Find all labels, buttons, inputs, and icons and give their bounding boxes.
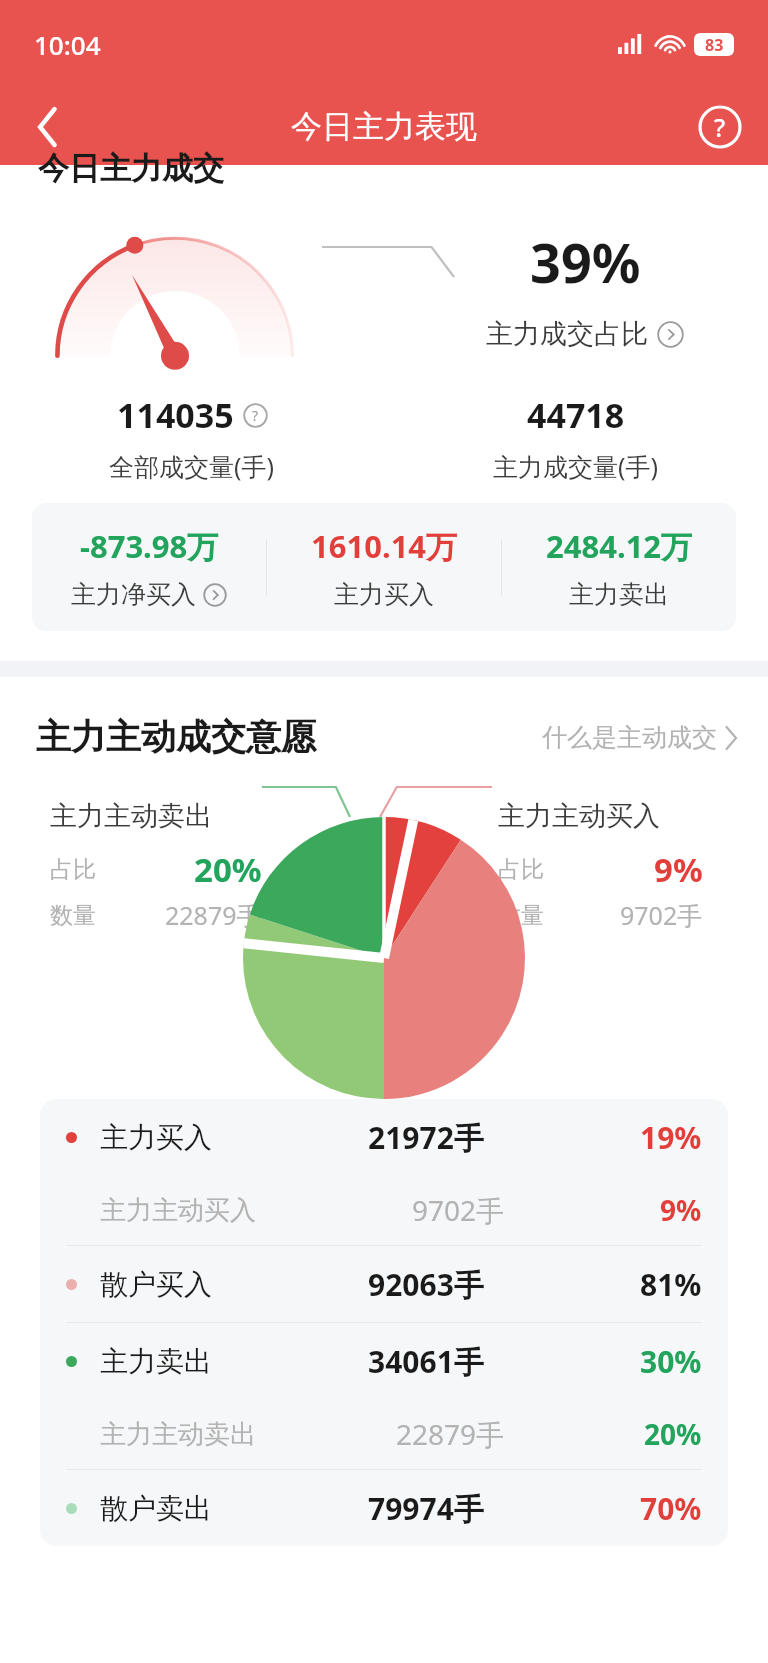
staticText: 39%: [530, 225, 641, 299]
staticText: 34061手: [368, 1341, 484, 1382]
staticText: 主力成交占比: [486, 317, 648, 351]
staticText: 散户卖出: [100, 1491, 212, 1526]
button[interactable]: 散户卖出: [66, 1470, 702, 1546]
staticText: 全部成交量(手): [109, 449, 275, 483]
staticText: 散户买入: [100, 1267, 212, 1302]
staticText: ?: [714, 110, 726, 144]
button[interactable]: 什么是主动成交: [542, 722, 738, 753]
staticText: 主力主动成交意愿: [36, 715, 316, 759]
button[interactable]: 2484.12万: [502, 525, 736, 610]
staticText: 主力主动卖出: [50, 799, 212, 833]
button[interactable]: 主力主动卖出: [66, 1399, 702, 1469]
button[interactable]: Back: [0, 88, 96, 165]
staticText: 9702手: [412, 1191, 505, 1229]
staticText: 主力卖出: [100, 1344, 212, 1379]
staticText: ?: [252, 406, 259, 425]
staticText: 79974手: [368, 1488, 484, 1529]
staticText: 主力主动卖出: [100, 1418, 256, 1451]
button[interactable]: Help: [672, 88, 768, 165]
staticText: 主力买入: [100, 1120, 212, 1155]
button[interactable]: -873.98万: [32, 525, 266, 610]
staticText: 数量: [50, 901, 96, 930]
staticText: 83: [705, 34, 724, 56]
button[interactable]: 主力主动买入: [66, 1175, 702, 1245]
staticText: 9%: [654, 847, 703, 892]
staticText: 70%: [640, 1488, 702, 1529]
staticText: 今日主力成交: [38, 149, 224, 188]
staticText: 主力主动买入: [498, 799, 660, 833]
staticText: 10:04: [34, 27, 101, 62]
staticText: 什么是主动成交: [542, 722, 717, 753]
staticText: 21972手: [368, 1117, 484, 1158]
staticText: 44718: [527, 392, 625, 438]
staticText: 30%: [640, 1341, 702, 1382]
staticText: 数量: [498, 901, 544, 930]
staticText: 22879手: [396, 1415, 505, 1453]
staticText: 20%: [194, 847, 262, 892]
staticText: 主力买入: [334, 579, 434, 610]
staticText: 92063手: [368, 1264, 484, 1305]
staticText: 20%: [644, 1415, 702, 1453]
staticText: 19%: [640, 1117, 702, 1158]
staticText: 占比: [498, 855, 544, 884]
staticText: 今日主力表现: [291, 107, 477, 146]
staticText: 主力主动买入: [100, 1194, 256, 1227]
staticText: 主力成交量(手): [493, 449, 659, 483]
staticText: 9%: [660, 1191, 702, 1229]
staticText: 2484.12万: [546, 525, 693, 567]
button[interactable]: 1610.14万: [267, 525, 501, 610]
staticText: 9702手: [620, 898, 703, 932]
staticText: 22879手: [165, 898, 262, 932]
staticText: 主力卖出: [569, 579, 669, 610]
button[interactable]: 主力买入: [66, 1099, 702, 1175]
button[interactable]: 散户买入: [66, 1246, 702, 1322]
staticText: -873.98万: [80, 525, 219, 567]
staticText: 114035: [117, 392, 234, 438]
staticText: 1610.14万: [311, 525, 458, 567]
button[interactable]: 主力卖出: [66, 1323, 702, 1399]
staticText: 主力净买入: [71, 579, 196, 610]
staticText: 81%: [640, 1264, 702, 1305]
staticText: 占比: [50, 855, 96, 884]
button[interactable]: 主力成交占比: [486, 317, 684, 351]
